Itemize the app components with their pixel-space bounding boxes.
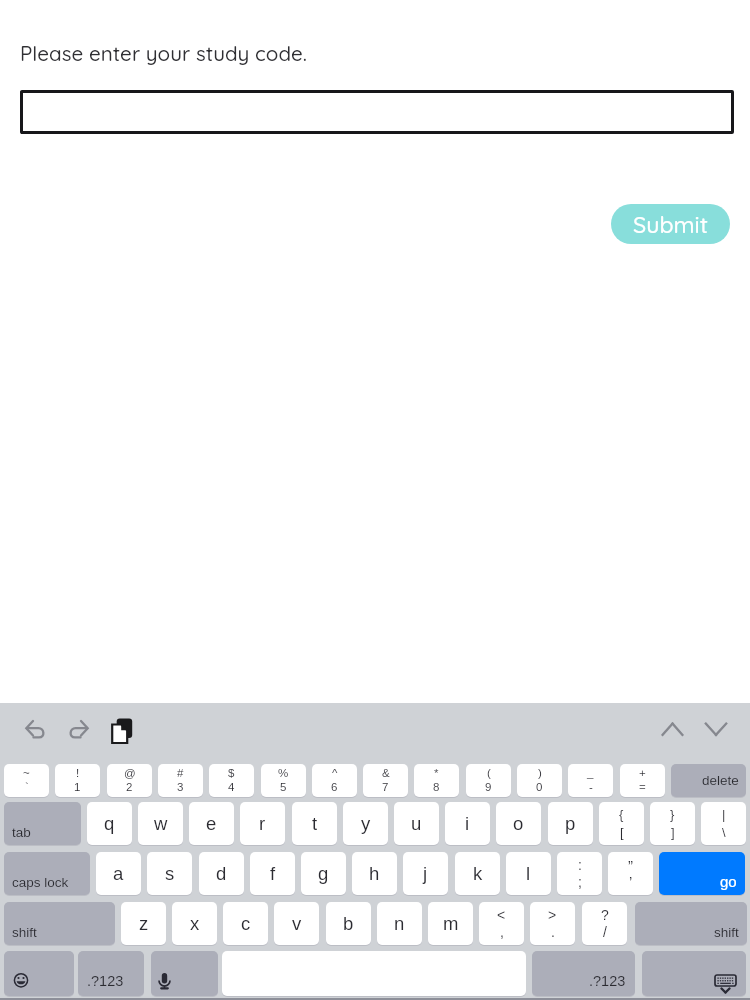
button[interactable]: n [377,902,422,945]
button[interactable]: { [599,802,644,845]
staticText: ` [25,781,29,794]
button[interactable]: Previous field [652,713,692,753]
staticText: 9 [485,781,492,794]
button[interactable]: t [292,802,337,845]
button[interactable]: ^ [312,764,357,797]
staticText: ? [601,907,609,923]
staticText: = [639,781,646,794]
button[interactable]: s [147,852,192,895]
button[interactable]: ( [466,764,511,797]
button[interactable]: Hide keyboard [642,951,746,996]
button[interactable]: i [445,802,490,845]
button[interactable]: g [301,852,346,895]
button[interactable]: x [172,902,217,945]
staticText: | [722,807,726,822]
button[interactable]: < [479,902,524,945]
staticText: 3 [177,781,184,794]
staticText: $ [228,767,235,780]
staticText: h [369,863,380,884]
button[interactable]: a [96,852,141,895]
button[interactable]: b [326,902,371,945]
button[interactable]: + [620,764,665,797]
staticText: f [270,863,276,884]
button[interactable]: Next field [696,713,736,753]
button[interactable]: q [87,802,132,845]
button[interactable]: m [428,902,473,945]
staticText: ) [538,767,542,780]
button[interactable]: k [455,852,500,895]
staticText: e [206,813,217,834]
button[interactable]: d [199,852,244,895]
staticText: 6 [331,781,338,794]
staticText: ; [578,874,582,890]
button[interactable]: go [659,852,745,895]
staticText: j [423,863,428,884]
button[interactable]: * [414,764,459,797]
button[interactable]: : [557,852,602,895]
staticText: w [154,813,168,834]
button[interactable]: f [250,852,295,895]
staticText: 8 [433,781,440,794]
button[interactable]: | [701,802,746,845]
staticText: * [434,767,439,780]
button[interactable]: shift [635,902,747,945]
button[interactable]: v [274,902,319,945]
button[interactable]: h [352,852,397,895]
button[interactable]: Undo [7,709,47,749]
button[interactable]: ! [55,764,100,797]
button[interactable]: ~ [4,764,49,797]
button[interactable]: ) [517,764,562,797]
button[interactable]: z [121,902,166,945]
staticText: .?123 [87,973,124,989]
button[interactable]: > [530,902,575,945]
button[interactable]: # [158,764,203,797]
staticText: < [497,907,506,923]
staticText: / [603,924,607,940]
staticText: _ [587,767,594,780]
staticText: c [241,913,251,934]
button[interactable]: _ [568,764,613,797]
button[interactable]: Submit [611,204,730,244]
button[interactable]: ” [608,852,653,895]
button[interactable]: caps lock [4,852,90,895]
button[interactable]: delete [671,764,746,797]
button[interactable]: e [189,802,234,845]
button[interactable]: w [138,802,183,845]
staticText: v [292,913,302,934]
button[interactable]: o [496,802,541,845]
button[interactable]: $ [209,764,254,797]
button[interactable]: shift [4,902,115,945]
button[interactable]: c [223,902,268,945]
staticText: caps lock [12,875,69,890]
button[interactable]: @ [107,764,152,797]
button[interactable]: y [343,802,388,845]
button[interactable]: Paste [100,704,140,744]
staticText: u [411,813,422,834]
button[interactable]: ? [582,902,627,945]
button[interactable]: tab [4,802,81,845]
staticText: [ [620,825,624,840]
button[interactable]: r [240,802,285,845]
staticText: o [513,813,524,834]
staticText: ( [487,767,491,780]
button[interactable] [20,90,734,134]
button[interactable]: Dictation [151,951,218,996]
staticText: l [526,863,531,884]
button[interactable]: u [394,802,439,845]
button[interactable]: p [548,802,593,845]
staticText: ~ [23,767,30,780]
button[interactable]: j [403,852,448,895]
button[interactable]: } [650,802,695,845]
button[interactable]: .?123 [532,951,635,996]
staticText: n [394,913,405,934]
button[interactable]: l [506,852,551,895]
staticText: Please enter your study code. [20,40,308,66]
staticText: ] [671,825,675,840]
button[interactable]: Redo [59,709,99,749]
button[interactable]: Emoji [4,951,74,996]
button[interactable]: .?123 [78,951,144,996]
button[interactable]: & [363,764,408,797]
button[interactable]: % [261,764,306,797]
staticText: : [578,857,582,873]
